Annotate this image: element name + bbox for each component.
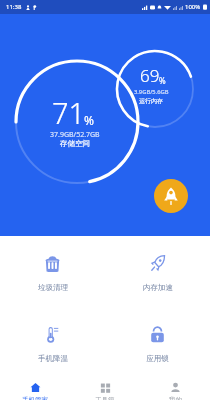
button[interactable]: 我的 — [140, 370, 210, 400]
button[interactable]: 一键加速 — [154, 179, 188, 213]
staticText: 手机管家 — [22, 396, 48, 400]
button[interactable]: 工具箱 — [70, 370, 140, 400]
staticText: 69 — [140, 64, 160, 87]
staticText: 11:38 — [6, 3, 22, 11]
staticText: 手机降温 — [38, 354, 68, 363]
staticText: % — [84, 112, 94, 128]
button[interactable]: 垃圾清理 — [0, 250, 105, 297]
staticText: 内存加速 — [143, 283, 173, 292]
staticText: 工具箱 — [95, 396, 115, 400]
staticText: 应用锁 — [146, 354, 169, 363]
staticText: 我的 — [169, 396, 182, 400]
staticText: 71 — [52, 93, 86, 132]
staticText: 100% — [185, 3, 201, 11]
button[interactable]: 内存加速 — [105, 250, 210, 297]
staticText: 3.9GB/5.6GB — [134, 88, 169, 96]
button[interactable]: 手机管家 — [0, 370, 70, 400]
button[interactable]: 手机降温 — [0, 321, 105, 368]
staticText: 运行内存 — [139, 97, 163, 105]
staticText: 37.9GB/52.7GB — [50, 130, 100, 140]
staticText: % — [159, 75, 166, 86]
staticText: 垃圾清理 — [38, 283, 68, 292]
staticText: 存储空间 — [60, 139, 90, 148]
button[interactable]: 应用锁 — [105, 321, 210, 368]
